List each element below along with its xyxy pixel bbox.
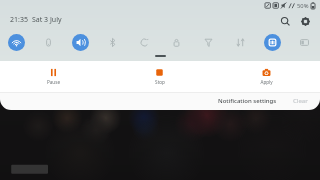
button[interactable]: Smart View (288, 30, 320, 54)
button[interactable]: Auto rotate (128, 30, 160, 54)
button[interactable]: Search (276, 12, 294, 30)
staticText: Apply (260, 79, 273, 85)
staticText: Stop (155, 79, 165, 85)
staticText: Pause (47, 79, 60, 85)
button[interactable]: Lock (160, 30, 192, 54)
staticText: Notification settings (218, 97, 277, 105)
button[interactable]: Apply (213, 61, 320, 92)
button[interactable]: Bluetooth (96, 30, 128, 54)
button[interactable]: Wi-Fi (0, 30, 32, 54)
staticText: 50% (297, 2, 309, 10)
staticText: 21:35 (10, 15, 28, 25)
button[interactable]: Filter (192, 30, 224, 54)
button[interactable]: Power saving (256, 30, 288, 54)
button[interactable]: Clear (289, 94, 312, 108)
button[interactable]: Pause (0, 61, 106, 92)
staticText: Sat 3 July (32, 15, 62, 25)
button[interactable]: Sound (64, 30, 96, 54)
button[interactable]: Mobile data (224, 30, 256, 54)
button[interactable]: Vibrate (32, 30, 64, 54)
button[interactable]: Settings (296, 12, 314, 30)
staticText: Clear (293, 97, 308, 105)
button[interactable]: Notification settings (214, 94, 281, 108)
button[interactable]: Stop (106, 61, 213, 92)
